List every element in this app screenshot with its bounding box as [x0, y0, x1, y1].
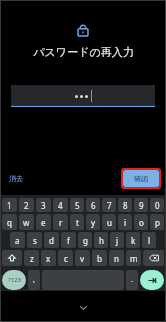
staticText: r — [59, 217, 63, 228]
button[interactable]: 1 — [2, 198, 17, 212]
staticText: u — [107, 217, 112, 228]
button[interactable]: , — [28, 270, 40, 290]
staticText: v — [80, 253, 85, 264]
button[interactable]: f — [61, 232, 76, 248]
staticText: l — [148, 235, 151, 246]
staticText: c — [64, 253, 68, 264]
button[interactable]: 6 — [86, 198, 100, 212]
button[interactable]: r — [53, 214, 68, 230]
staticText: 6 — [91, 200, 96, 211]
staticText: ?123 — [8, 276, 21, 284]
staticText: . — [131, 275, 133, 285]
button[interactable]: Enter — [140, 270, 164, 290]
button[interactable]: Backspace — [143, 250, 164, 266]
staticText: 0 — [155, 200, 160, 211]
staticText: g — [83, 235, 88, 246]
button[interactable]: q — [2, 214, 17, 230]
button[interactable]: 消去 — [6, 171, 26, 186]
staticText: q — [7, 217, 12, 228]
button[interactable] — [11, 85, 155, 107]
staticText: , — [33, 275, 35, 285]
staticText: y — [91, 217, 96, 228]
staticText: 8 — [123, 200, 128, 211]
staticText: s — [33, 235, 37, 246]
button[interactable]: y — [86, 214, 100, 230]
button[interactable]: c — [58, 250, 73, 266]
staticText: 4 — [58, 200, 63, 211]
button[interactable]: z — [24, 250, 39, 266]
staticText: o — [139, 217, 144, 228]
staticText: 2 — [24, 200, 29, 211]
staticText: m — [130, 253, 138, 264]
button[interactable]: p — [150, 214, 164, 230]
button[interactable]: 7 — [102, 198, 116, 212]
button[interactable]: 4 — [53, 198, 68, 212]
button[interactable]: 9 — [134, 198, 148, 212]
staticText: パスワードの再入力 — [33, 45, 134, 59]
button[interactable]: w — [19, 214, 34, 230]
button[interactable]: 0 — [150, 198, 164, 212]
button[interactable]: Hide keyboard — [76, 300, 90, 314]
button[interactable]: 2 — [19, 198, 34, 212]
staticText: i — [124, 217, 127, 228]
button[interactable]: Shift — [2, 250, 22, 266]
button[interactable]: j — [110, 232, 124, 248]
button[interactable]: h — [94, 232, 108, 248]
staticText: 1 — [7, 200, 12, 211]
button[interactable]: i — [118, 214, 132, 230]
staticText: j — [116, 235, 119, 246]
button[interactable]: a — [10, 232, 25, 248]
staticText: 3 — [41, 200, 46, 211]
button[interactable]: b — [92, 250, 107, 266]
staticText: d — [49, 235, 54, 246]
button[interactable]: g — [78, 232, 92, 248]
staticText: f — [67, 235, 70, 246]
staticText: e — [41, 217, 46, 228]
button[interactable]: e — [36, 214, 51, 230]
staticText: t — [76, 217, 79, 228]
button[interactable]: l — [142, 232, 156, 248]
staticText: z — [30, 253, 34, 264]
button[interactable]: o — [134, 214, 148, 230]
button[interactable]: 8 — [118, 198, 132, 212]
staticText: k — [131, 235, 136, 246]
staticText: 7 — [107, 200, 112, 211]
button[interactable]: n — [109, 250, 124, 266]
staticText: p — [155, 217, 160, 228]
button[interactable]: ?123 — [2, 270, 26, 290]
button[interactable]: s — [27, 232, 42, 248]
staticText: 確認 — [134, 174, 148, 183]
staticText: 9 — [139, 200, 144, 211]
button[interactable]: 5 — [70, 198, 84, 212]
button[interactable]: d — [44, 232, 59, 248]
button[interactable]: 3 — [36, 198, 51, 212]
staticText: x — [46, 253, 51, 264]
button[interactable]: m — [126, 250, 141, 266]
staticText: 5 — [75, 200, 80, 211]
button[interactable]: k — [126, 232, 140, 248]
button[interactable]: v — [75, 250, 90, 266]
button[interactable]: 確認 — [123, 170, 159, 187]
button[interactable]: t — [70, 214, 84, 230]
staticText: a — [15, 235, 20, 246]
button[interactable]: u — [102, 214, 116, 230]
staticText: h — [99, 235, 104, 246]
other: Lock — [75, 22, 91, 38]
button[interactable]: x — [41, 250, 56, 266]
button[interactable]: . — [126, 270, 138, 290]
staticText: 消去 — [9, 174, 23, 183]
staticText: b — [97, 253, 102, 264]
staticText: n — [114, 253, 119, 264]
staticText: w — [23, 217, 30, 228]
